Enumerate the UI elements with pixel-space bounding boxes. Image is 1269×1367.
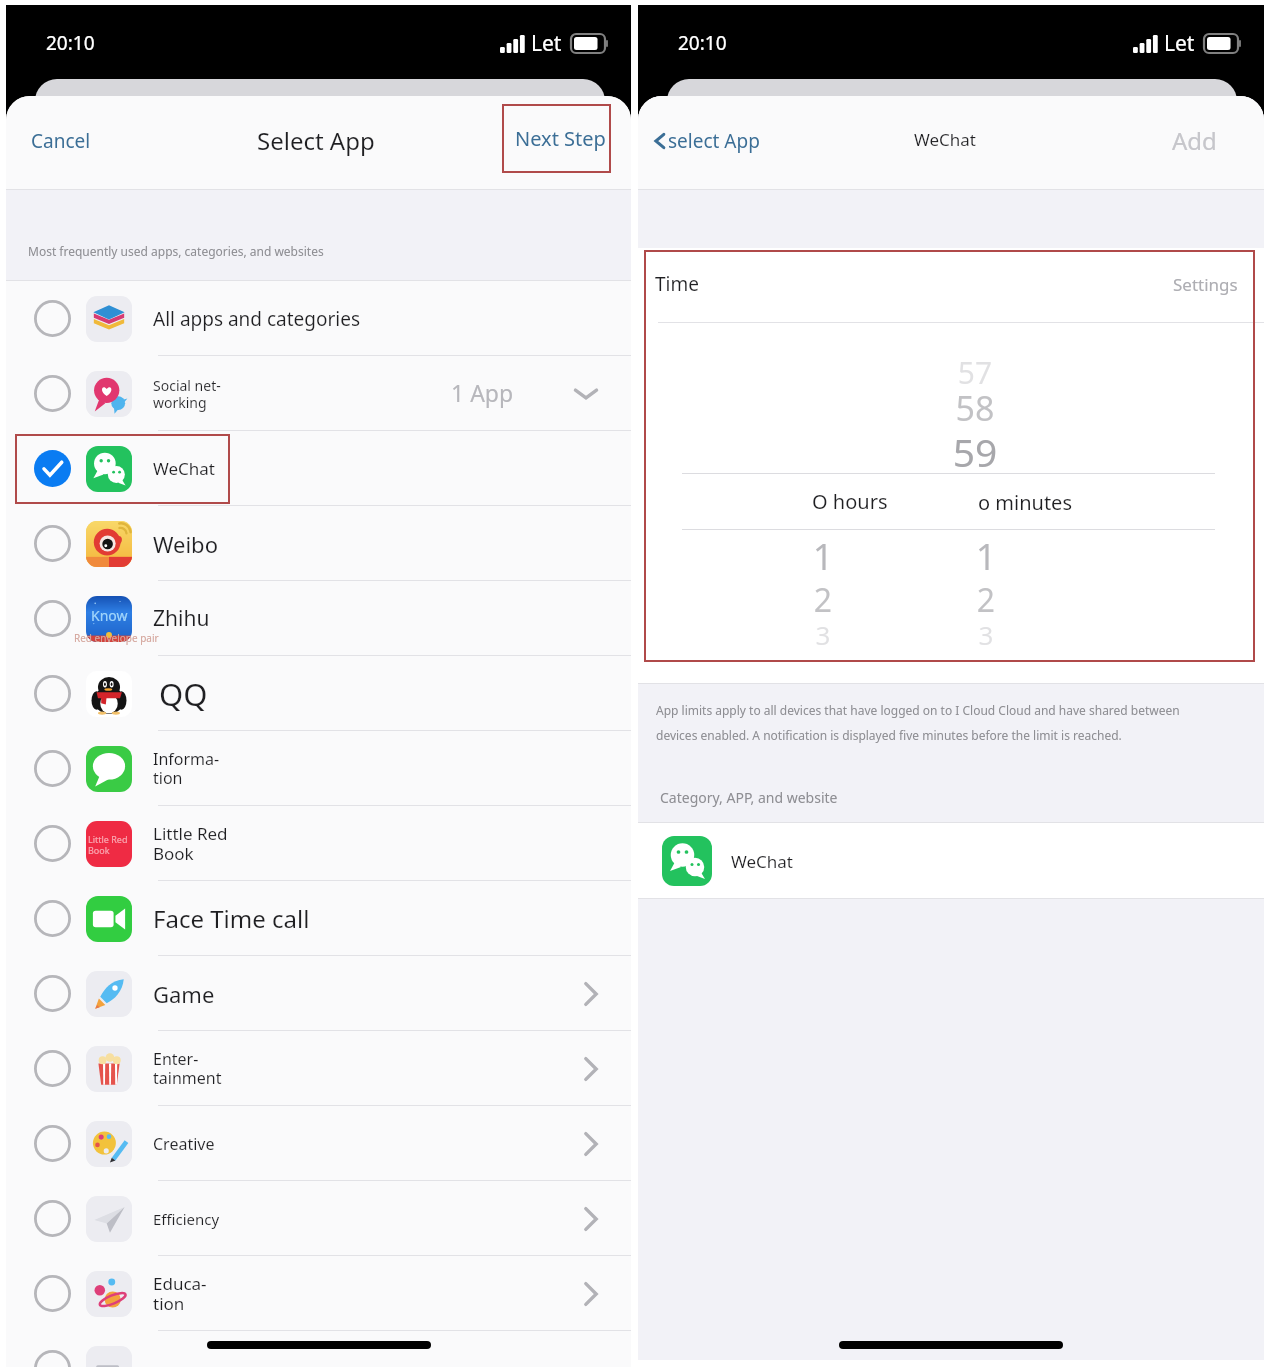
staticText: Red envelope pair [74,631,159,645]
staticText: Informa- tion [153,748,220,789]
button[interactable] [6,1331,631,1367]
staticText: o minutes [978,489,1072,516]
staticText: Category, APP, and website [660,788,838,807]
staticText: Enter- tainment [153,1048,222,1089]
staticText: Let [1164,29,1195,58]
staticText: Face Time call [153,902,310,935]
button[interactable]: Know [6,581,631,656]
staticText: 20:10 [46,30,95,56]
staticText: WeChat [914,128,976,151]
staticText: 1 [946,532,1026,581]
staticText: Settings [1173,273,1238,296]
staticText: QQ [159,673,208,715]
staticText: 3 [783,617,863,652]
button[interactable]: Informa- tion [6,731,631,806]
staticText: Next Step [515,125,606,152]
staticText: 20:10 [678,30,727,56]
staticText: 57 [935,352,1015,393]
staticText: 58 [935,385,1015,431]
staticText: 1 [783,532,863,581]
staticText: select App [668,128,760,154]
button[interactable]: WeChat [6,431,631,506]
staticText: App limits apply to all devices that hav… [656,702,1180,744]
staticText: WeChat [153,457,215,480]
button[interactable]: Face Time call [6,881,631,956]
button[interactable]: Creative [6,1106,631,1181]
staticText: Educa- tion [153,1272,207,1315]
button[interactable]: Efficiency [6,1181,631,1256]
staticText: Creative [153,1133,215,1155]
staticText: Little Red Book [88,833,128,856]
staticText: 2 [783,578,863,622]
staticText: Know [91,606,128,625]
staticText: Zhihu [153,604,210,633]
staticText: Time [655,271,699,297]
staticText: 2 [946,578,1026,622]
staticText: Most frequently used apps, categories, a… [28,243,324,259]
staticText: WeChat [731,850,793,873]
staticText: Efficiency [153,1209,220,1229]
staticText: Little Red Book [153,822,228,865]
staticText: 3 [946,617,1026,652]
button[interactable]: Weibo [6,506,631,581]
button[interactable]: Educa- tion [6,1256,631,1331]
button[interactable]: QQ [6,656,631,731]
button[interactable]: Social net- working [6,356,631,431]
button[interactable]: Cancel [21,120,101,166]
button[interactable]: Enter- tainment [6,1031,631,1106]
staticText: Social net- working [153,376,221,412]
staticText: Game [153,979,215,1009]
button[interactable]: 57 [638,248,1264,683]
button[interactable]: Next Step [502,119,619,166]
button[interactable]: Back to Select App [646,118,766,164]
staticText: Add [1172,124,1217,157]
button[interactable]: All apps and categories [6,281,631,356]
staticText: Cancel [31,128,91,154]
staticText: Weibo [153,529,218,559]
staticText: O hours [812,488,888,515]
staticText: 1 App [451,377,514,408]
button[interactable]: WeChat [638,823,1264,898]
staticText: Select App [257,124,375,157]
staticText: All apps and categories [153,306,361,332]
button[interactable]: Game [6,956,631,1031]
button[interactable]: Add [1162,114,1227,167]
button[interactable]: Time [638,248,1264,320]
staticText: 59 [935,425,1015,478]
button[interactable]: Little Red Book [6,806,631,881]
staticText: Let [531,29,562,58]
